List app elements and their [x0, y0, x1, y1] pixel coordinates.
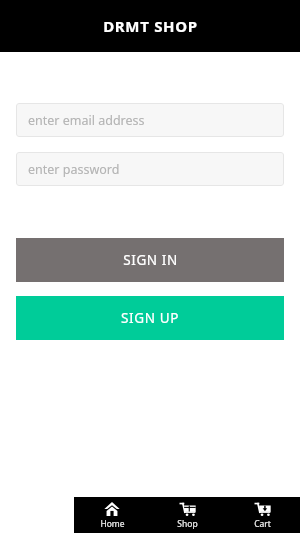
- button[interactable]: enter email address: [16, 103, 284, 137]
- staticText: SIGN UP: [121, 309, 179, 327]
- staticText: enter password: [28, 161, 120, 178]
- button[interactable]: Home: [74, 501, 150, 530]
- button[interactable]: SIGN UP: [16, 296, 284, 340]
- button[interactable]: enter password: [16, 152, 284, 186]
- staticText: Home: [100, 518, 125, 530]
- staticText: Shop: [177, 518, 198, 530]
- button[interactable]: Shop: [150, 501, 225, 530]
- button[interactable]: SIGN IN: [16, 238, 284, 282]
- staticText: DRMT SHOP: [103, 16, 198, 36]
- button[interactable]: Cart: [225, 501, 300, 530]
- staticText: Cart: [254, 518, 271, 530]
- staticText: SIGN IN: [123, 251, 178, 269]
- staticText: enter email address: [28, 112, 145, 129]
